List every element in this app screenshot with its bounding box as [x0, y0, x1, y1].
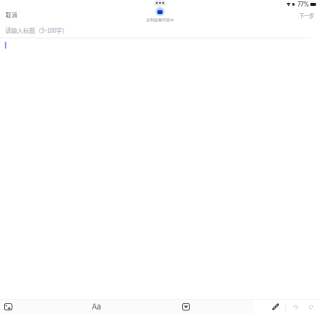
- staticText: 录制屏幕内容中: [146, 17, 174, 23]
- button[interactable]: Text format: [86, 299, 106, 314]
- staticText: 77%: [297, 1, 308, 8]
- button[interactable]: Draw: [268, 299, 284, 314]
- button[interactable]: 下一步: [294, 8, 319, 23]
- button[interactable]: Add photo: [0, 299, 18, 314]
- button[interactable]: Redo: [304, 299, 318, 314]
- button[interactable]: Stickers: [176, 299, 196, 314]
- staticText: 下一步: [299, 12, 314, 19]
- staticText: 请输入标题（5~100字）: [5, 26, 68, 34]
- button[interactable]: Undo: [289, 299, 303, 314]
- button[interactable]: 取消: [0, 6, 22, 22]
- staticText: 取消: [5, 10, 17, 18]
- staticText: Aa: [92, 302, 101, 311]
